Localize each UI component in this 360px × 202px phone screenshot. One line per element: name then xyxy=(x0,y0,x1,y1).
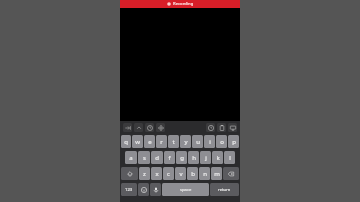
button[interactable]: h xyxy=(188,151,199,164)
staticText: e xyxy=(148,138,152,146)
staticText: r xyxy=(160,138,163,146)
staticText: h xyxy=(192,154,196,162)
staticText: 123 xyxy=(125,187,133,193)
staticText: space xyxy=(180,187,192,193)
button[interactable]: z xyxy=(139,167,150,180)
button[interactable]: x xyxy=(151,167,162,180)
button[interactable]: d xyxy=(151,151,163,164)
staticText: y xyxy=(184,138,188,146)
staticText: u xyxy=(196,138,200,146)
staticText: k xyxy=(216,154,220,162)
staticText: g xyxy=(180,154,184,162)
button[interactable]: History xyxy=(206,123,215,132)
button[interactable]: w xyxy=(132,135,143,148)
button[interactable]: Caret xyxy=(134,123,143,132)
button[interactable]: Recording indicator xyxy=(120,0,240,8)
button[interactable]: r xyxy=(156,135,167,148)
button[interactable]: q xyxy=(121,135,131,148)
staticText: b xyxy=(191,170,195,178)
button[interactable]: p xyxy=(228,135,239,148)
staticText: q xyxy=(124,138,128,146)
button[interactable]: Clipboard xyxy=(217,123,226,132)
button[interactable]: s xyxy=(138,151,150,164)
button[interactable]: a xyxy=(125,151,137,164)
button[interactable]: b xyxy=(187,167,198,180)
button[interactable]: t xyxy=(168,135,179,148)
staticText: j xyxy=(205,154,207,162)
button[interactable]: v xyxy=(175,167,186,180)
staticText: m xyxy=(214,170,220,178)
staticText: c xyxy=(167,170,170,178)
staticText: n xyxy=(203,170,207,178)
button[interactable]: c xyxy=(163,167,174,180)
button[interactable]: e xyxy=(144,135,155,148)
staticText: a xyxy=(129,154,133,162)
button[interactable]: space xyxy=(162,183,209,196)
staticText: d xyxy=(155,154,159,162)
staticText: Recording xyxy=(173,1,194,7)
button[interactable]: u xyxy=(192,135,203,148)
button[interactable]: g xyxy=(176,151,187,164)
button[interactable]: k xyxy=(212,151,223,164)
staticText: p xyxy=(232,138,236,146)
staticText: f xyxy=(168,154,171,162)
staticText: w xyxy=(135,138,140,146)
button[interactable]: y xyxy=(180,135,191,148)
staticText: t xyxy=(172,138,175,146)
button[interactable]: Emoji xyxy=(138,183,149,196)
button[interactable]: Tab xyxy=(123,123,132,132)
button[interactable]: Shift xyxy=(121,167,138,180)
staticText: x xyxy=(155,170,159,178)
staticText: i xyxy=(209,138,211,146)
button[interactable]: j xyxy=(200,151,211,164)
button[interactable]: Display xyxy=(228,123,237,132)
staticText: v xyxy=(179,170,183,178)
staticText: o xyxy=(220,138,224,146)
button[interactable]: m xyxy=(211,167,222,180)
button[interactable]: n xyxy=(199,167,210,180)
button[interactable]: i xyxy=(204,135,215,148)
button[interactable]: Backspace xyxy=(223,167,239,180)
button[interactable]: Dictate xyxy=(150,183,161,196)
button[interactable]: return xyxy=(210,183,239,196)
staticText: l xyxy=(229,154,231,162)
button[interactable]: Undo xyxy=(145,123,154,132)
staticText: z xyxy=(143,170,146,178)
staticText: s xyxy=(143,154,146,162)
button[interactable]: o xyxy=(216,135,227,148)
staticText: return xyxy=(218,187,231,193)
button[interactable]: Move xyxy=(156,123,165,132)
button[interactable]: f xyxy=(164,151,175,164)
button[interactable]: l xyxy=(224,151,235,164)
button[interactable]: 123 xyxy=(121,183,137,196)
